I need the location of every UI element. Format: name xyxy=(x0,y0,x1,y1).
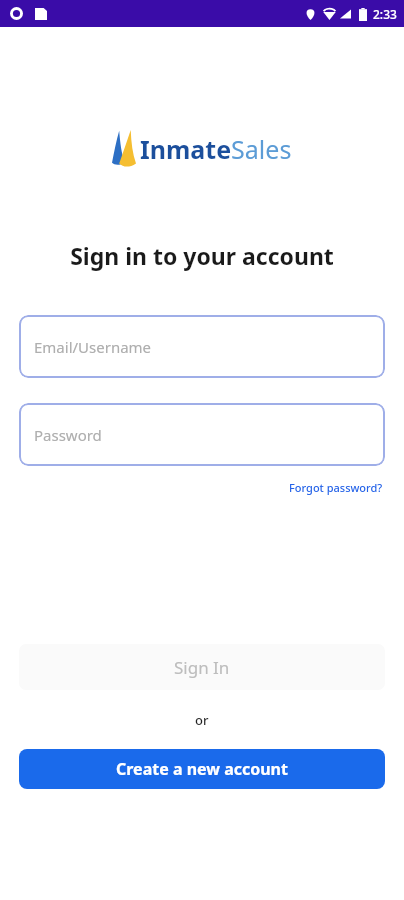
staticText: Create a new account xyxy=(116,758,288,780)
button[interactable]: Email/Username xyxy=(19,315,385,378)
staticText: Forgot password? xyxy=(289,480,383,495)
staticText: Sign In xyxy=(174,656,230,679)
button[interactable]: Sign In xyxy=(19,644,385,690)
staticText: InmateSales xyxy=(140,132,292,166)
staticText: or xyxy=(195,711,209,729)
staticText: 2:33 xyxy=(373,6,397,22)
button[interactable]: Password xyxy=(19,403,385,466)
button[interactable]: Create a new account xyxy=(19,749,385,789)
staticText: Password xyxy=(34,425,102,445)
staticText: Email/Username xyxy=(34,337,152,357)
staticText: Sign in to your account xyxy=(70,240,334,271)
button[interactable]: Forgot password? xyxy=(287,478,385,497)
